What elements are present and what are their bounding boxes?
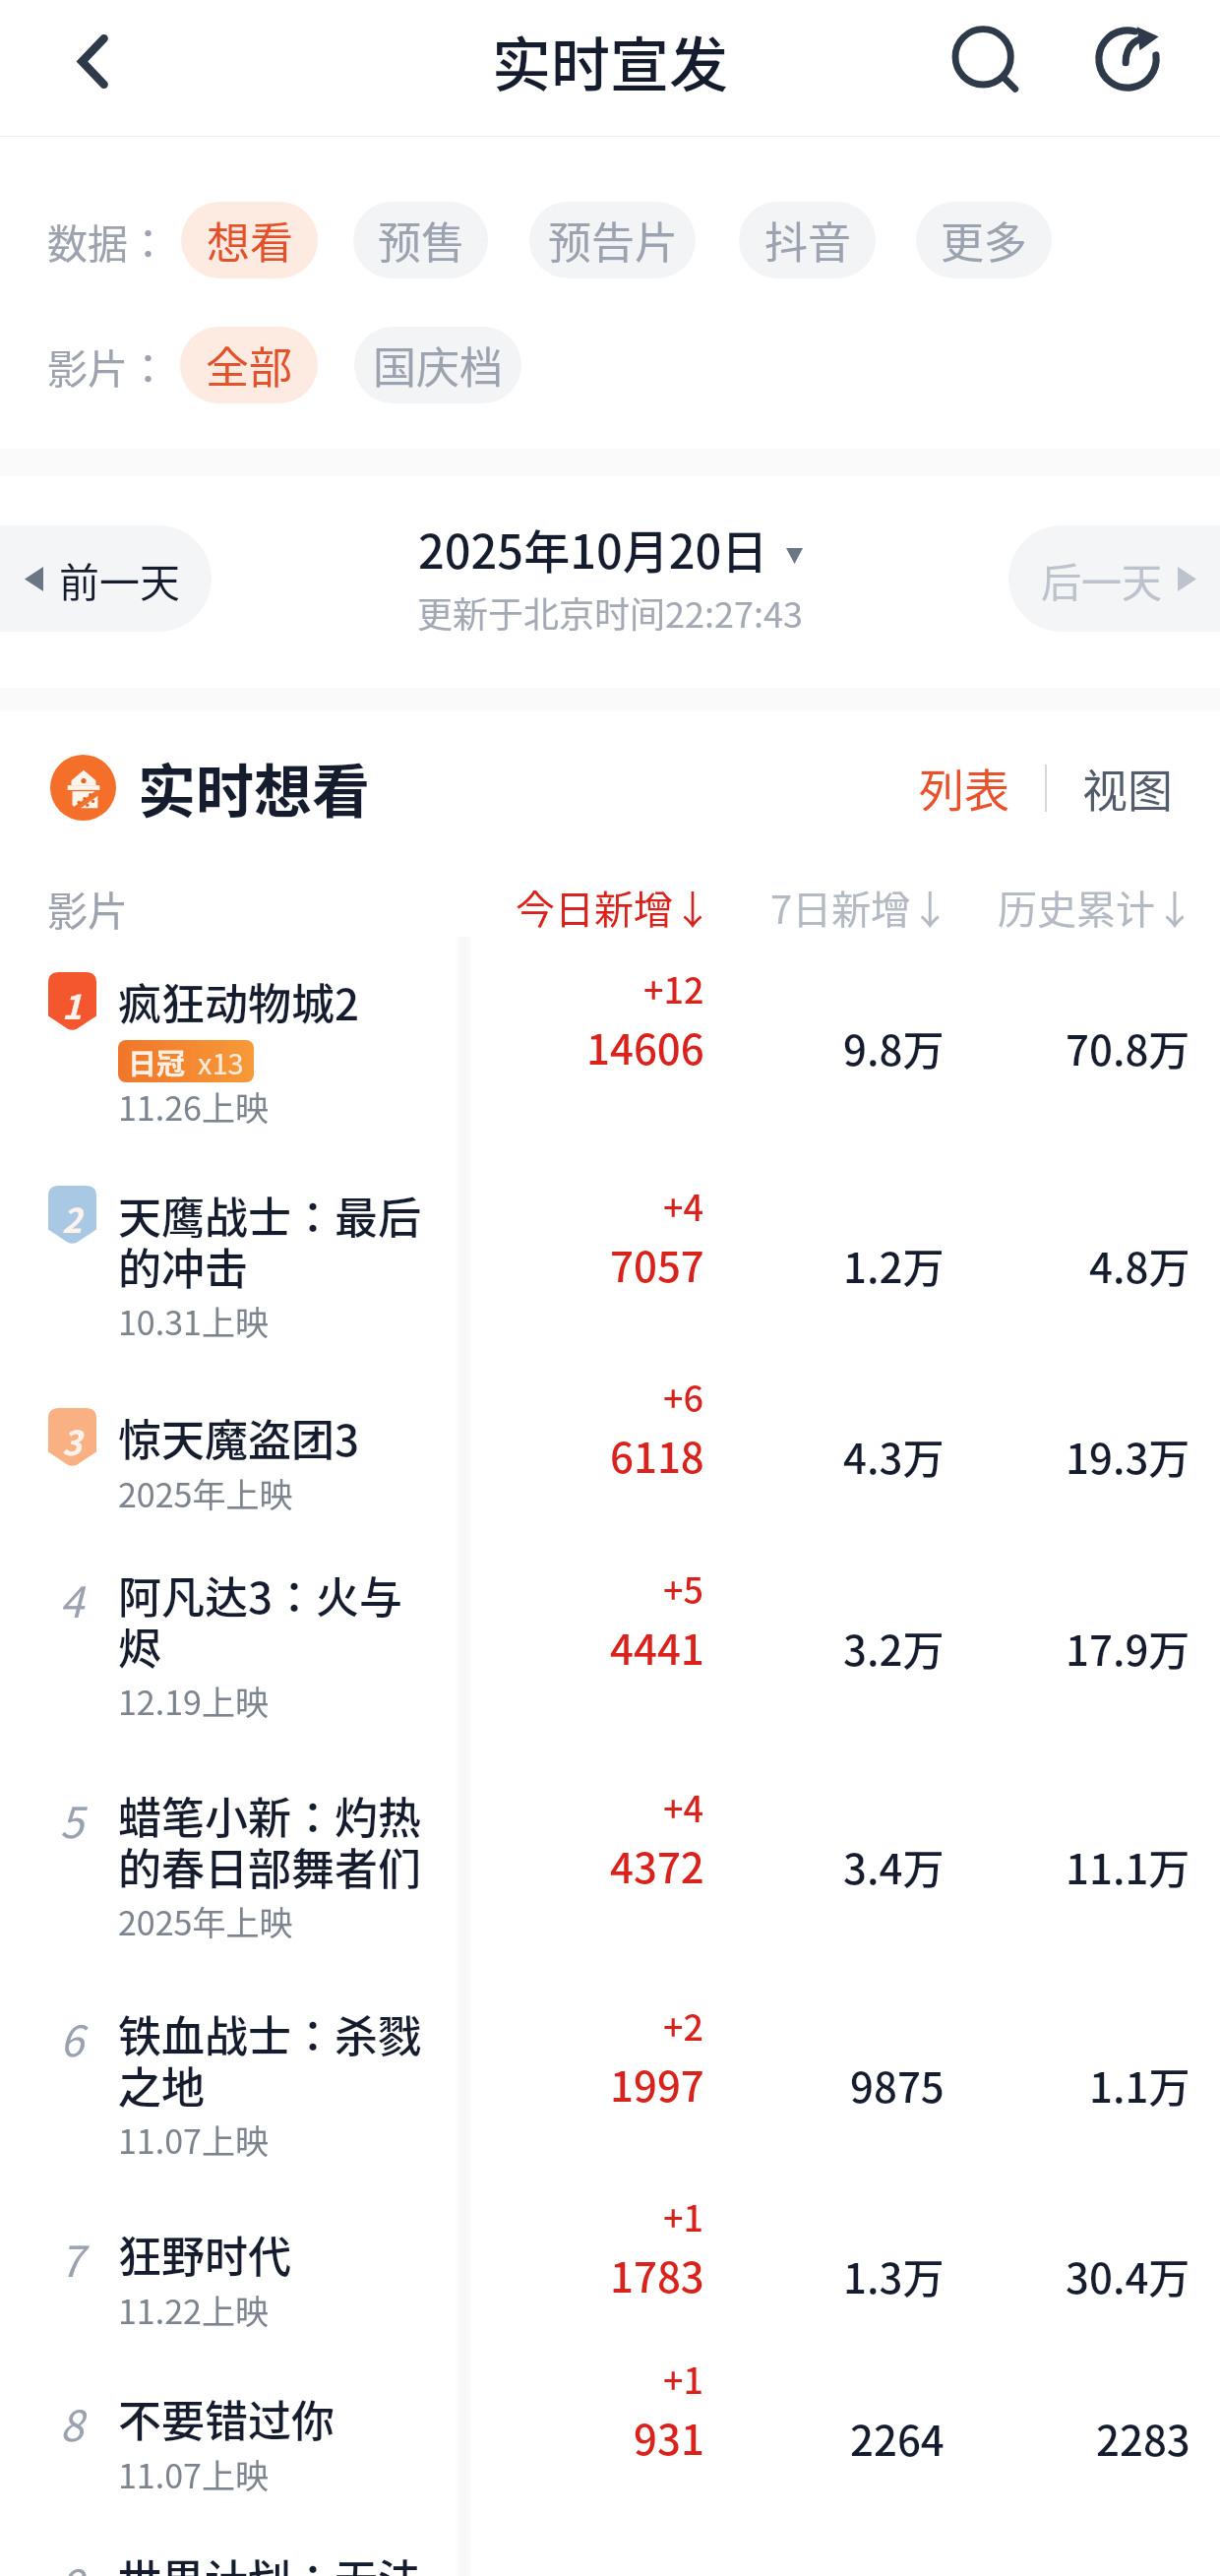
button[interactable]: Back — [52, 18, 131, 96]
staticText: 4441 — [610, 1617, 704, 1677]
staticText: 11.1万 — [1066, 1836, 1190, 1896]
button[interactable]: 2 — [0, 1150, 1220, 1373]
staticText: 11.22上映 — [118, 2286, 269, 2334]
staticText: 9 — [60, 2551, 84, 2576]
button[interactable]: 视图 — [1072, 745, 1183, 830]
staticText: 2264 — [850, 2408, 945, 2468]
button[interactable]: 4 — [0, 1530, 1220, 1750]
staticText: 2025年上映 — [118, 1897, 293, 1945]
staticText: 蜡笔小新：灼热的春日部舞者们 — [118, 1784, 425, 1897]
staticText: 国庆档 — [373, 334, 503, 397]
staticText: 世界计划：无法 — [118, 2546, 421, 2576]
staticText: 日冠 — [128, 1041, 186, 1082]
staticText: 2283 — [1096, 2408, 1190, 2468]
staticText: 狂野时代 — [118, 2223, 291, 2286]
button[interactable]: 全部 — [180, 327, 318, 403]
button[interactable]: 后一天 — [1008, 525, 1220, 632]
button[interactable]: 预告片 — [529, 202, 696, 278]
staticText: 3 — [62, 1417, 83, 1465]
staticText: 4.3万 — [843, 1426, 945, 1486]
staticText: 11.07上映 — [118, 2450, 269, 2498]
staticText: 7 — [60, 2228, 84, 2289]
staticText: 14606 — [586, 1016, 704, 1076]
staticText: 实时宣发 — [492, 18, 728, 103]
staticText: 1.3万 — [843, 2245, 945, 2305]
staticText: 今日新增↓ — [516, 879, 712, 936]
staticText: 70.8万 — [1066, 1017, 1190, 1077]
staticText: 历史累计↓ — [998, 879, 1194, 936]
staticText: 6 — [60, 2007, 84, 2068]
staticText: 更多 — [941, 209, 1027, 272]
staticText: 4.8万 — [1089, 1235, 1190, 1295]
button[interactable]: 预售 — [353, 202, 488, 278]
staticText: +1 — [663, 2353, 704, 2404]
staticText: 铁血战士：杀戮之地 — [118, 2002, 425, 2116]
button[interactable]: Share — [1083, 13, 1178, 107]
button[interactable]: 6 — [0, 1969, 1220, 2189]
staticText: 30.4万 — [1066, 2245, 1190, 2305]
staticText: 11.26上映 — [118, 1082, 269, 1131]
staticText: 1.2万 — [843, 1235, 945, 1295]
staticText: 2025年上映 — [118, 1469, 293, 1517]
staticText: 1997 — [610, 2054, 704, 2114]
button[interactable]: 想看 — [181, 202, 318, 278]
staticText: 惊天魔盗团3 — [118, 1406, 360, 1469]
button[interactable]: 2025年10月20日 — [418, 515, 803, 582]
staticText: 前一天 — [59, 550, 180, 608]
staticText: 想看 — [207, 209, 293, 272]
staticText: 影片 — [47, 879, 128, 937]
button[interactable]: Search — [940, 13, 1034, 107]
staticText: 7日新增↓ — [770, 879, 950, 936]
staticText: 9.8万 — [843, 1017, 945, 1077]
staticText: +4 — [663, 1781, 704, 1832]
staticText: +12 — [643, 962, 704, 1013]
button[interactable]: 列表 — [909, 745, 1019, 830]
button[interactable]: 9 — [0, 2513, 1220, 2576]
staticText: 19.3万 — [1066, 1426, 1190, 1486]
button[interactable]: 3 — [0, 1373, 1220, 1530]
staticText: 4 — [60, 1568, 84, 1629]
staticText: 2 — [62, 1195, 83, 1243]
staticText: 6118 — [610, 1425, 704, 1485]
staticText: 列表 — [919, 755, 1009, 821]
staticText: 数据： — [47, 212, 168, 270]
staticText: 后一天 — [1041, 550, 1162, 608]
staticText: 7057 — [610, 1234, 704, 1294]
staticText: 抖音 — [764, 209, 851, 272]
staticText: 4372 — [610, 1835, 704, 1895]
staticText: 9875 — [850, 2055, 945, 2115]
button[interactable]: 8 — [0, 2354, 1220, 2513]
button[interactable]: 5 — [0, 1750, 1220, 1969]
button[interactable]: 前一天 — [0, 525, 212, 632]
staticText: 12.19上映 — [118, 1677, 269, 1725]
staticText: 5 — [60, 1789, 84, 1850]
staticText: 1 — [62, 981, 83, 1029]
button[interactable]: 1 — [0, 937, 1220, 1150]
staticText: 2025年10月20日 — [418, 515, 768, 582]
button[interactable]: 国庆档 — [354, 327, 521, 403]
button[interactable]: 抖音 — [739, 202, 876, 278]
button[interactable]: 更多 — [916, 202, 1052, 278]
staticText: 3.4万 — [843, 1836, 945, 1896]
staticText: +4 — [663, 1180, 704, 1231]
button[interactable]: 7 — [0, 2189, 1220, 2354]
staticText: 影片： — [47, 337, 168, 395]
staticText: +2 — [663, 1999, 704, 2051]
staticText: +6 — [663, 1371, 704, 1422]
staticText: x13 — [198, 1041, 244, 1082]
staticText: 17.9万 — [1066, 1618, 1190, 1678]
staticText: 11.07上映 — [118, 2116, 269, 2164]
staticText: 阿凡达3：火与烬 — [118, 1564, 425, 1677]
staticText: 8 — [60, 2392, 84, 2453]
staticText: 931 — [634, 2407, 704, 2467]
staticText: 视图 — [1082, 755, 1173, 821]
staticText: 不要错过你 — [118, 2387, 335, 2450]
staticText: +5 — [663, 1563, 704, 1614]
staticText: 1783 — [610, 2244, 704, 2304]
staticText: 实时想看 — [138, 746, 371, 829]
staticText: 疯狂动物城2 — [118, 970, 360, 1033]
staticText: 全部 — [206, 334, 292, 397]
staticText: 10.31上映 — [118, 1297, 269, 1345]
staticText: 预售 — [378, 209, 464, 272]
